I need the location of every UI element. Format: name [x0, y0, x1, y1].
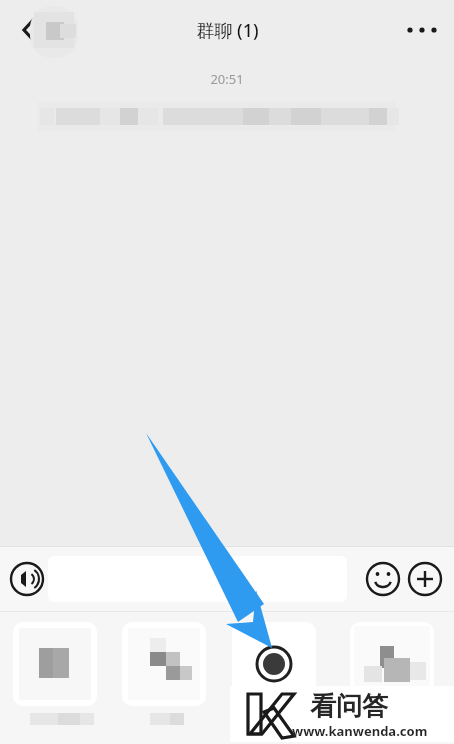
staticText: 20:51 — [0, 70, 454, 88]
button[interactable]: Photo — [122, 622, 206, 706]
button[interactable]: More functions — [404, 558, 446, 600]
button[interactable]: Record video — [232, 622, 316, 706]
staticText: www.kanwenda.com — [292, 722, 428, 740]
staticText: 看问答 — [310, 690, 388, 723]
button[interactable] — [48, 556, 347, 602]
button[interactable]: Photo — [350, 622, 434, 706]
button[interactable]: Emoji — [362, 558, 404, 600]
button[interactable]: Photo — [13, 622, 97, 706]
button[interactable]: More options — [398, 2, 454, 58]
button[interactable]: Back — [0, 2, 80, 58]
button[interactable]: Voice input — [6, 558, 48, 600]
staticText: 群聊 (1) — [196, 18, 259, 43]
